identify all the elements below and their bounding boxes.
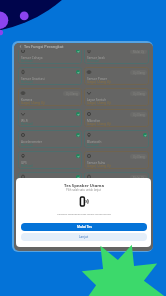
staticText: Berhasil	[21, 59, 33, 63]
staticText: Getar	[87, 182, 96, 186]
button[interactable]: Sensor Jarak	[84, 46, 149, 64]
button[interactable]: Wi-Fi	[18, 109, 82, 127]
staticText: Layar Sentuh	[87, 98, 107, 102]
staticText: Berhasil	[21, 122, 33, 126]
staticText: Uji Ulang	[133, 113, 145, 117]
staticText: Lanjut	[79, 235, 89, 239]
button[interactable]: Uji Ulang	[63, 91, 80, 96]
staticText: Berhasil	[87, 143, 99, 147]
button[interactable]: Uji Ulang	[130, 112, 147, 117]
staticText: Sensor Gravitasi	[21, 77, 45, 81]
staticText: Sensor Jarak	[87, 56, 105, 60]
button[interactable]: Speaker	[18, 172, 82, 190]
staticText: Berhasil	[21, 164, 33, 168]
staticText: Pilih salah satu untuk lanjut	[66, 188, 101, 192]
staticText: Berhasil	[87, 59, 99, 63]
staticText: Sensor Power	[87, 77, 107, 81]
button[interactable]: Mulai Uji	[130, 175, 147, 180]
staticText: Sensor Cahaya	[21, 56, 43, 60]
staticText: GPS	[21, 161, 27, 165]
staticText: Tes Speaker Utama	[64, 183, 104, 189]
staticText: Mikrofon	[87, 119, 101, 123]
button[interactable]: Sensor Cahaya	[18, 46, 82, 64]
button[interactable]: Kamera	[18, 88, 82, 106]
staticText: Pastikan perangkat tidak dalam mode heni…	[57, 212, 111, 215]
button[interactable]: Accelerometer	[18, 130, 82, 148]
staticText: Bluetooth	[87, 140, 102, 144]
button[interactable]: Bluetooth	[84, 130, 149, 148]
staticText: Mulai Uji	[133, 176, 145, 180]
button[interactable]: Mulai Uji	[130, 49, 147, 54]
button[interactable]: Sensor Suhu	[84, 151, 149, 169]
button[interactable]: Uji Ulang	[130, 154, 147, 159]
staticText: Berhasil	[21, 80, 33, 84]
staticText: Uji Ulang	[66, 92, 78, 96]
button[interactable]: Mulai Tes	[21, 223, 147, 231]
staticText: Berhasil	[87, 185, 99, 189]
button[interactable]: GPS	[18, 151, 82, 169]
button[interactable]: Sensor Power	[84, 67, 149, 85]
staticText: Wi-Fi	[21, 119, 29, 123]
button[interactable]: Back	[18, 44, 23, 49]
staticText: Tes Fungsi Perangkat	[24, 44, 64, 49]
staticText: Kamera	[21, 98, 33, 102]
staticText: Accelerometer	[21, 140, 43, 144]
staticText: Berhasil	[21, 143, 33, 147]
staticText: Sensor Suhu	[87, 161, 106, 165]
staticText: Gagal, Ulang Uji	[21, 101, 45, 105]
staticText: Gagal, Ulang Uji	[87, 164, 111, 168]
staticText: Gagal, Ulang Uji	[87, 80, 111, 84]
staticText: Uji Ulang	[133, 92, 145, 96]
button[interactable]: Getar	[84, 172, 149, 190]
staticText: Uji Ulang	[133, 71, 145, 75]
button[interactable]: Sensor Gravitasi	[18, 67, 82, 85]
button[interactable]: Uji Ulang	[130, 91, 147, 96]
staticText: Mulai Tes	[77, 225, 92, 229]
staticText: Gagal, Ulang Uji	[87, 101, 111, 105]
button[interactable]: Uji Ulang	[130, 70, 147, 75]
button[interactable]: Lanjut	[21, 233, 147, 241]
button[interactable]: Layar Sentuh	[84, 88, 149, 106]
staticText: Uji Ulang	[133, 155, 145, 159]
staticText: Mulai Uji	[133, 50, 145, 54]
button[interactable]: Mikrofon	[84, 109, 149, 127]
staticText: Gagal, Ulang Uji	[87, 122, 111, 126]
